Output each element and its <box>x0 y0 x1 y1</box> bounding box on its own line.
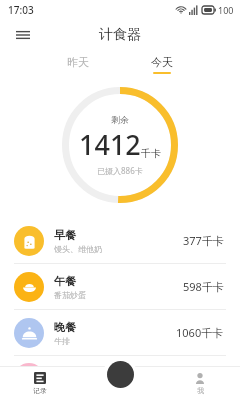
staticText: 昨天 <box>67 55 89 69</box>
button[interactable]: 加餐 <box>0 356 240 400</box>
staticText: 晚餐 <box>54 320 76 334</box>
staticText: 今天 <box>151 55 173 69</box>
staticText: 番茄炒蛋 <box>54 290 86 300</box>
staticText: 千卡 <box>141 147 161 160</box>
staticText: 馒头、维他奶 <box>54 244 102 254</box>
staticText: 剩余 <box>111 114 129 125</box>
staticText: 早餐 <box>54 228 76 242</box>
staticText: 598千卡 <box>183 279 224 294</box>
button[interactable]: 晚餐 <box>0 310 240 356</box>
button[interactable]: 午餐 <box>0 264 240 310</box>
staticText: 1060千卡 <box>176 325 224 340</box>
staticText: 100 <box>218 4 234 16</box>
button[interactable]: 今天 <box>143 53 181 76</box>
button[interactable]: 记录 <box>25 370 55 397</box>
staticText: 我 <box>197 386 204 395</box>
staticText: 已摄入886卡 <box>97 165 143 176</box>
button[interactable]: Add record <box>103 357 137 391</box>
button[interactable]: 昨天 <box>59 53 97 76</box>
staticText: 记录 <box>33 386 47 395</box>
staticText: 牛排 <box>54 336 70 346</box>
button[interactable]: Menu <box>10 22 36 48</box>
staticText: 377千卡 <box>183 233 224 248</box>
button[interactable]: 早餐 <box>0 218 240 264</box>
staticText: 400千卡 <box>183 371 224 386</box>
staticText: 计食器 <box>99 26 141 44</box>
staticText: 1412 <box>79 126 141 163</box>
button[interactable]: 我 <box>186 370 214 397</box>
staticText: 17:03 <box>8 3 34 17</box>
staticText: 午餐 <box>54 274 76 288</box>
